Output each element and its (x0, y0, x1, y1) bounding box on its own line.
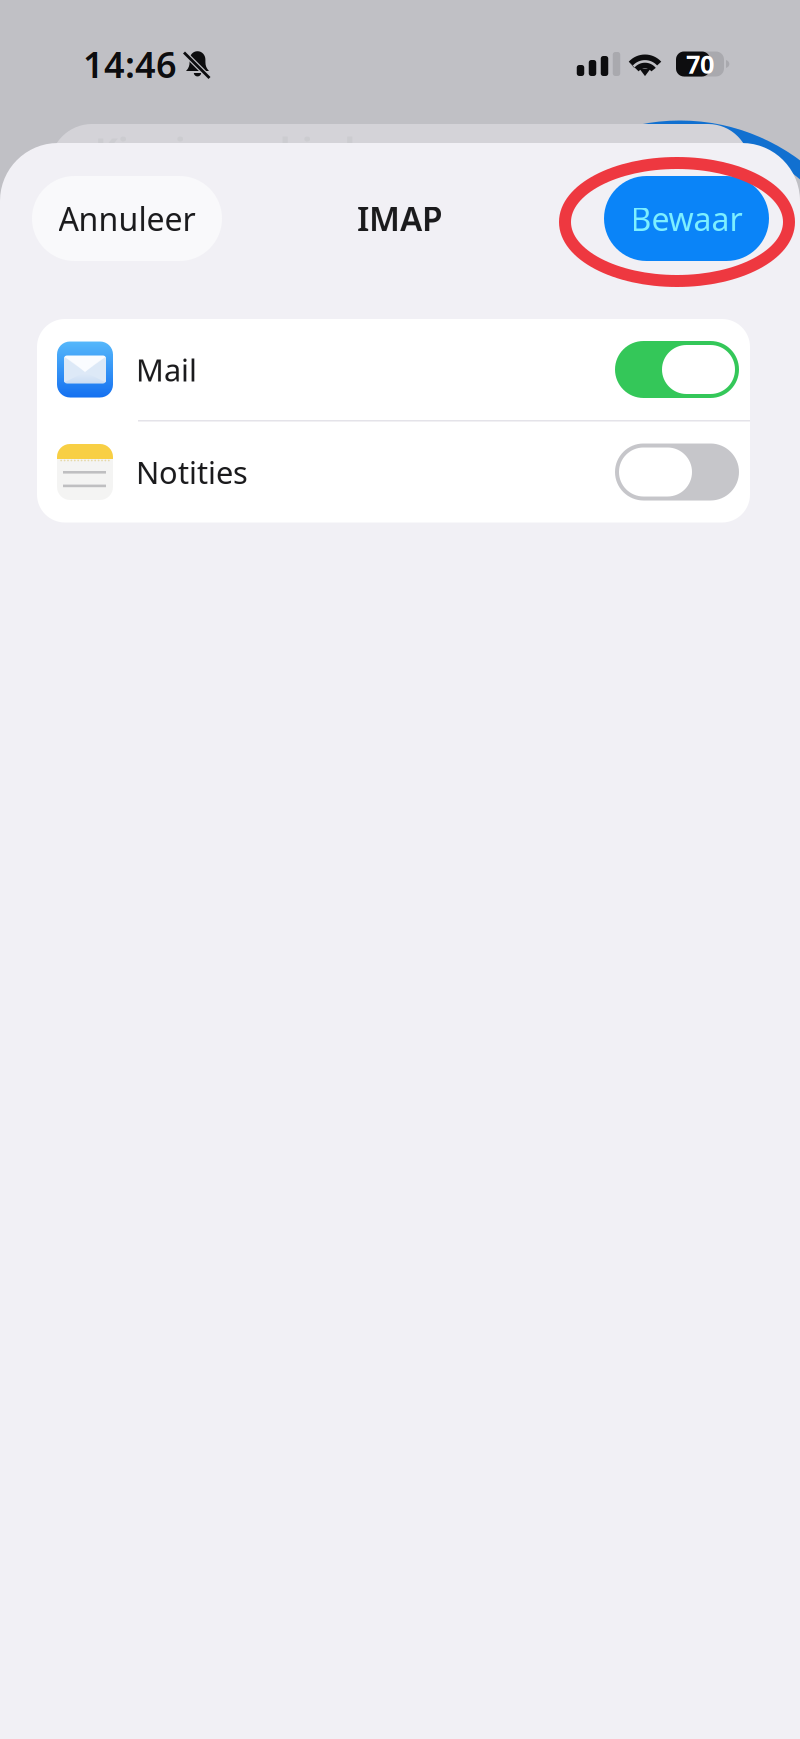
button[interactable]: Bewaar (604, 176, 769, 261)
staticText: Bewaar (630, 197, 742, 240)
staticText: 14:46 (83, 40, 177, 88)
staticText: Mail (136, 349, 197, 390)
staticText: 70 (686, 47, 714, 81)
staticText: Annuleer (58, 197, 195, 240)
button[interactable]: Mail (37, 319, 750, 420)
button[interactable]: Annuleer (32, 176, 222, 261)
staticText: Notities (136, 452, 248, 492)
staticText: IMAP (357, 196, 443, 241)
button[interactable]: Notities (37, 421, 750, 522)
staticText: Kies je aanbieder (95, 126, 391, 172)
